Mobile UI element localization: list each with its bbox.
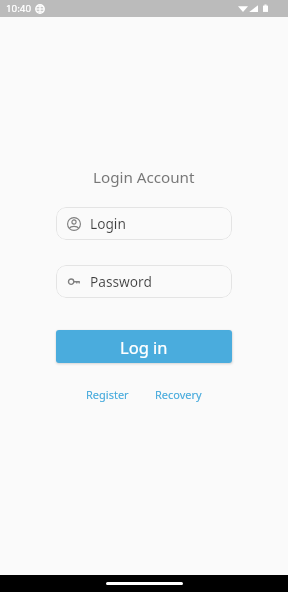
staticText: Password <box>90 272 152 291</box>
staticText: Log in <box>120 336 168 358</box>
button[interactable]: Register <box>82 385 133 404</box>
button[interactable]: Password <box>56 265 232 298</box>
staticText: Login <box>90 214 126 233</box>
staticText: Recovery <box>155 387 202 402</box>
staticText: Register <box>86 387 129 402</box>
button[interactable]: Log in <box>56 330 232 363</box>
button[interactable]: Recovery <box>151 385 206 404</box>
staticText: Login Account <box>93 167 195 188</box>
staticText: 10:40 <box>6 2 32 15</box>
button[interactable]: Login <box>56 207 232 240</box>
